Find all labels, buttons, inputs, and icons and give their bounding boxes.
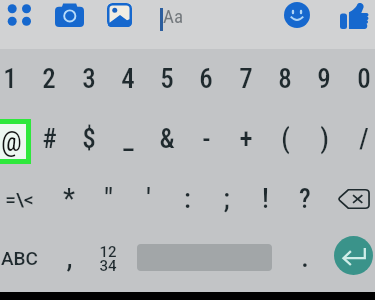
staticText: & bbox=[159, 123, 175, 155]
button[interactable]: $ bbox=[59, 121, 119, 157]
staticText: . bbox=[301, 242, 309, 274]
staticText: 0 bbox=[357, 63, 371, 95]
staticText: 3 bbox=[82, 63, 96, 95]
staticText: 2 bbox=[42, 63, 56, 95]
button[interactable]: : bbox=[157, 181, 217, 217]
button[interactable]: Aa bbox=[146, 1, 278, 31]
button[interactable]: Backspace bbox=[338, 188, 370, 210]
staticText: $ bbox=[82, 123, 96, 155]
button[interactable]: 5 bbox=[137, 61, 197, 97]
staticText: 8 bbox=[278, 63, 292, 95]
button[interactable]: + bbox=[216, 121, 276, 157]
button[interactable]: Gallery bbox=[107, 3, 132, 27]
button[interactable]: Like bbox=[340, 3, 368, 29]
button[interactable]: ) bbox=[294, 121, 354, 157]
staticText: / bbox=[359, 123, 369, 155]
button[interactable]: 12 34 bbox=[88, 238, 128, 278]
button[interactable]: & bbox=[137, 121, 197, 157]
button[interactable]: ' bbox=[118, 181, 178, 217]
button[interactable]: ABC bbox=[0, 240, 49, 276]
button[interactable]: More options bbox=[4, 1, 35, 29]
staticText: - bbox=[202, 123, 211, 155]
staticText: =\< bbox=[5, 188, 34, 210]
staticText: ) bbox=[320, 123, 329, 155]
button[interactable]: ; bbox=[196, 181, 256, 217]
button[interactable]: _ bbox=[98, 121, 158, 157]
staticText: _ bbox=[123, 123, 134, 155]
staticText: @ bbox=[0, 123, 21, 155]
staticText: , bbox=[66, 242, 73, 274]
staticText: 7 bbox=[239, 63, 253, 95]
staticText: 9 bbox=[317, 63, 331, 95]
button[interactable]: 6 bbox=[176, 61, 236, 97]
staticText: : bbox=[184, 183, 191, 215]
button[interactable]: . bbox=[275, 240, 335, 276]
staticText: ? bbox=[299, 183, 311, 215]
button[interactable]: ! bbox=[235, 181, 295, 217]
button[interactable]: ? bbox=[275, 181, 335, 217]
staticText: * bbox=[63, 183, 75, 215]
staticText: + bbox=[239, 123, 253, 155]
staticText: ; bbox=[223, 183, 230, 215]
staticText: " bbox=[104, 183, 113, 215]
staticText: 1 bbox=[3, 63, 17, 95]
button[interactable]: / bbox=[334, 121, 375, 157]
staticText: 5 bbox=[160, 63, 174, 95]
staticText: ABC bbox=[1, 247, 38, 269]
staticText: 6 bbox=[199, 63, 213, 95]
staticText: ' bbox=[146, 183, 151, 215]
staticText: ( bbox=[281, 123, 290, 155]
button[interactable]: Camera bbox=[55, 3, 84, 27]
button[interactable]: 4 bbox=[98, 61, 158, 97]
staticText: # bbox=[42, 123, 57, 155]
staticText: @ bbox=[1, 126, 22, 158]
button[interactable]: 3 bbox=[59, 61, 119, 97]
button[interactable]: " bbox=[78, 181, 138, 217]
button[interactable]: Enter bbox=[334, 236, 373, 275]
staticText: ! bbox=[262, 183, 269, 215]
button[interactable]: Emoji bbox=[284, 2, 310, 28]
staticText: Aa bbox=[163, 5, 184, 27]
button[interactable]: 0 bbox=[334, 61, 375, 97]
staticText: 12 34 bbox=[99, 243, 117, 274]
button[interactable]: @ bbox=[0, 121, 40, 157]
button[interactable]: - bbox=[176, 121, 236, 157]
button[interactable]: 2 bbox=[19, 61, 79, 97]
button[interactable]: ( bbox=[255, 121, 315, 157]
button[interactable]: =\< bbox=[0, 181, 49, 217]
button[interactable]: 7 bbox=[216, 61, 276, 97]
button[interactable]: # bbox=[19, 121, 79, 157]
button[interactable]: * bbox=[39, 181, 99, 217]
button[interactable]: 8 bbox=[255, 61, 315, 97]
button[interactable]: 1 bbox=[0, 61, 40, 97]
button[interactable]: @ bbox=[0, 124, 26, 159]
staticText: 4 bbox=[121, 63, 135, 95]
button[interactable]: 9 bbox=[294, 61, 354, 97]
button[interactable]: , bbox=[39, 240, 99, 276]
